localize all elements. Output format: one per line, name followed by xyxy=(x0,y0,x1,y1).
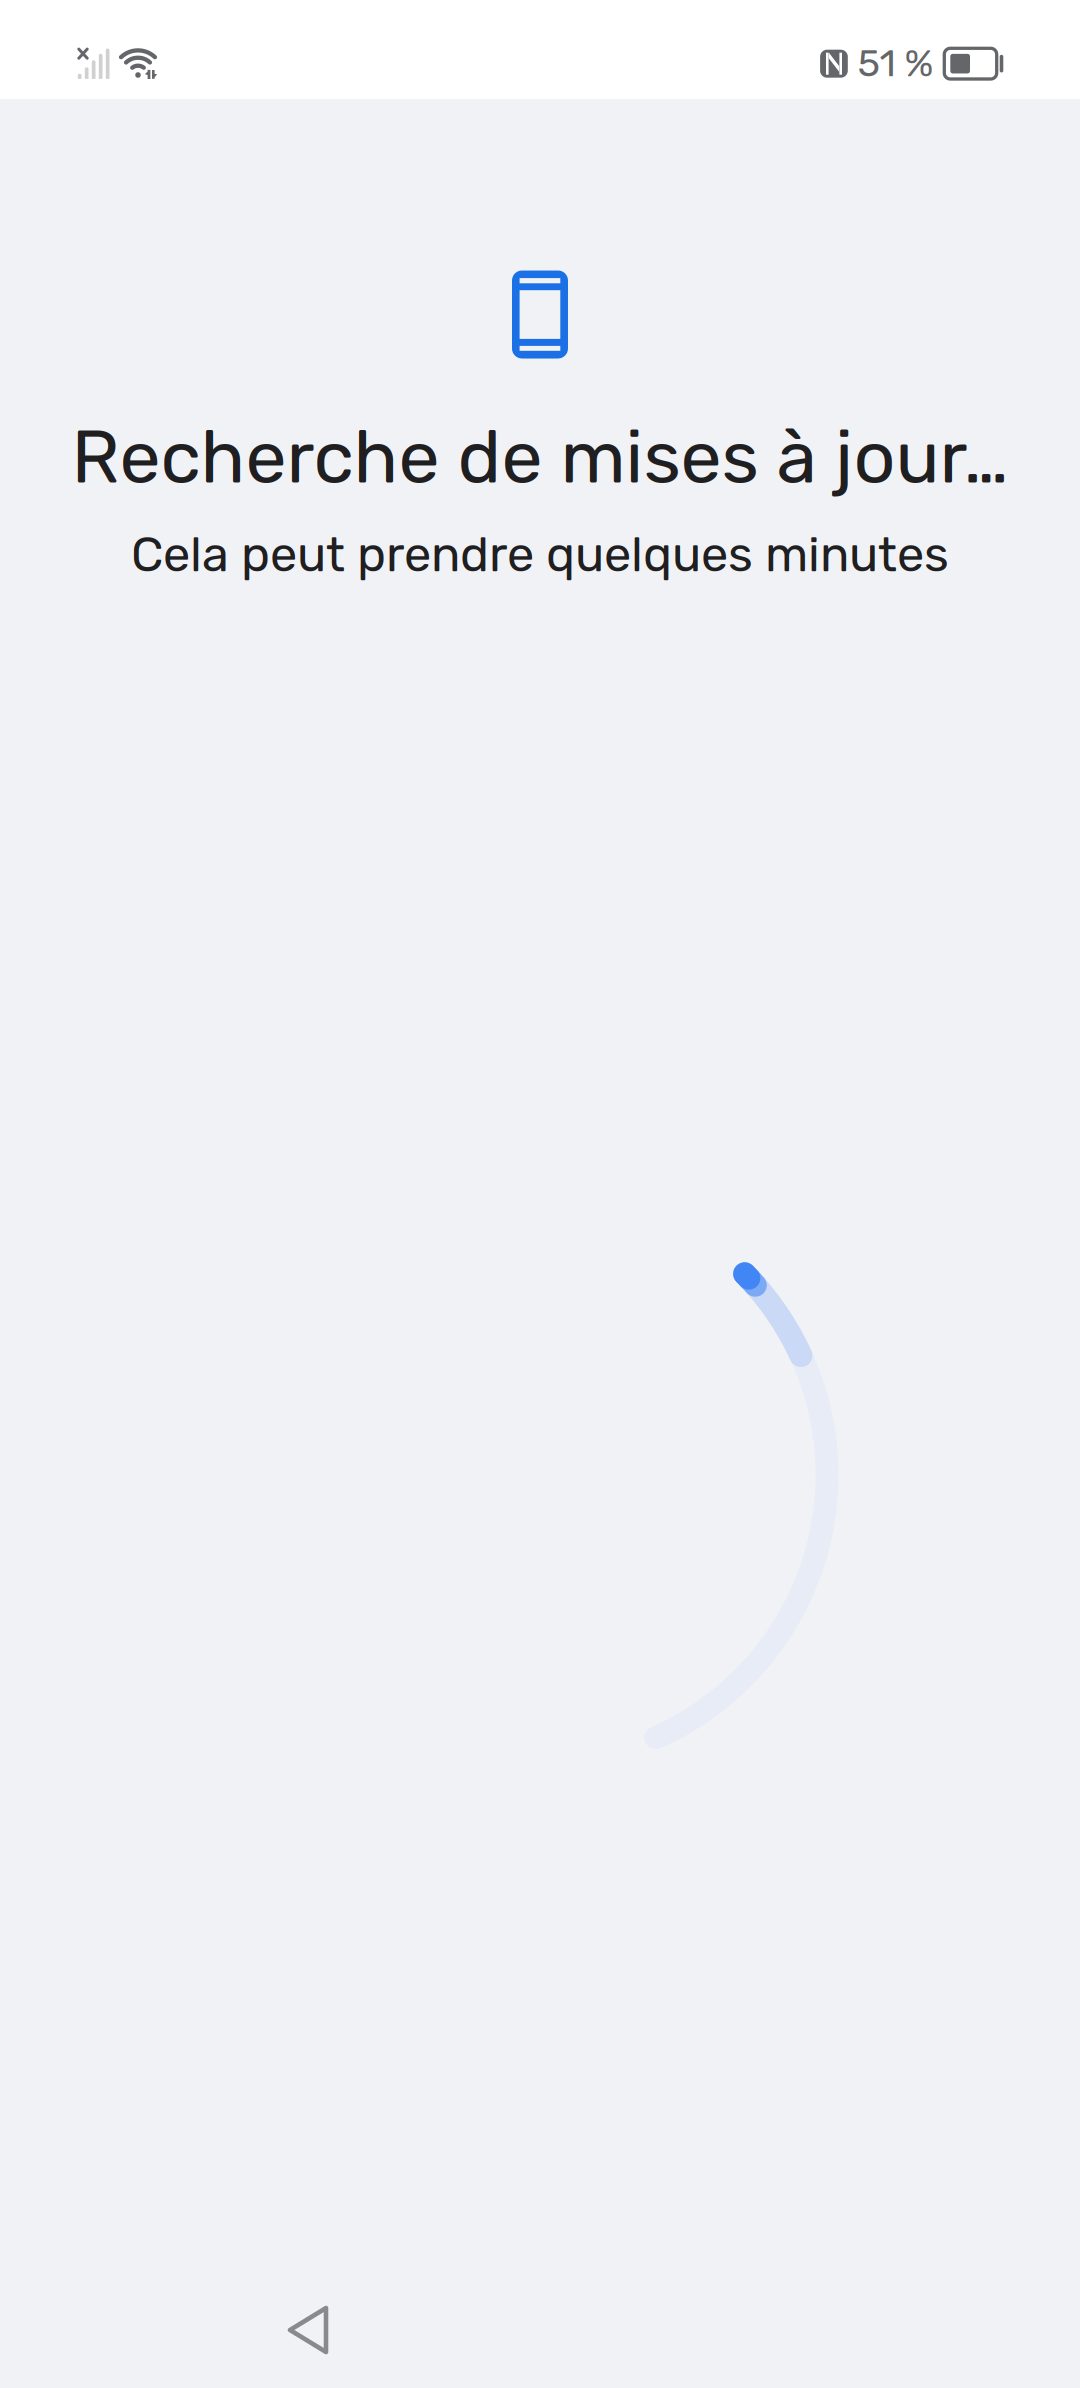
staticText: Cela peut prendre quelques minutes xyxy=(131,526,949,583)
staticText: Recherche de mises à jour… xyxy=(71,414,1008,501)
button[interactable]: Back xyxy=(243,2265,373,2388)
staticText: 51 % xyxy=(857,41,933,86)
